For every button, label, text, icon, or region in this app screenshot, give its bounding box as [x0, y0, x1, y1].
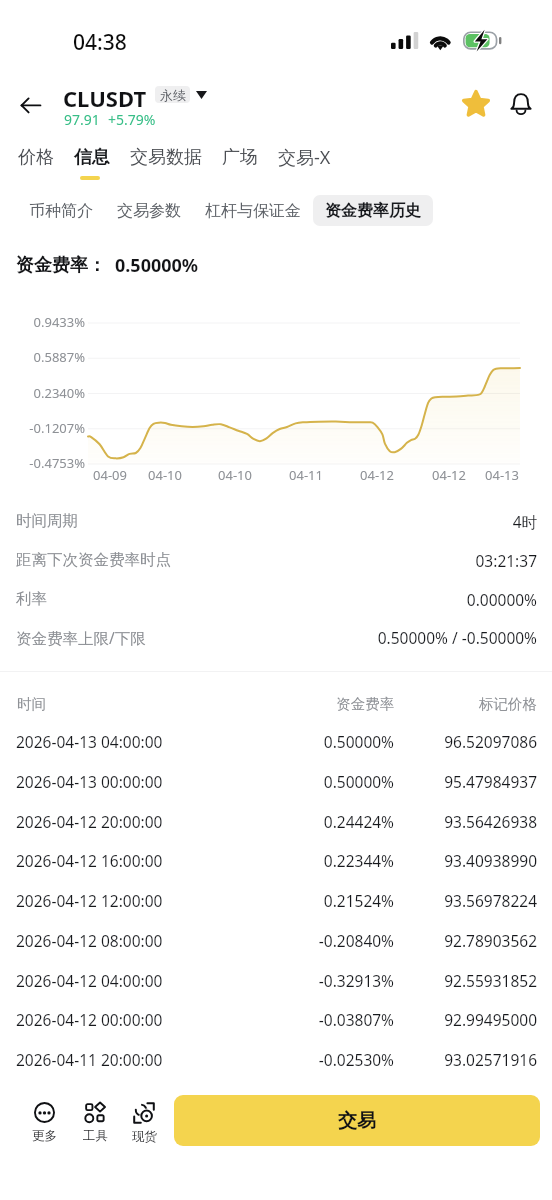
- staticText: 杠杆与保证金: [205, 201, 301, 221]
- staticText: 2026-04-13 00:00:00: [16, 771, 163, 792]
- staticText: 0.2340%: [15, 384, 85, 402]
- staticText: 93.56426938: [390, 811, 537, 832]
- staticText: 永续: [160, 87, 186, 103]
- staticText: 资金费率: [250, 695, 394, 713]
- staticText: 04:38: [73, 28, 127, 57]
- staticText: 93.40938990: [390, 850, 537, 871]
- staticText: 广场: [222, 146, 258, 169]
- staticText: 时间周期: [16, 511, 78, 531]
- staticText: -0.02530%: [240, 1049, 394, 1070]
- staticText: 0.00000%: [200, 589, 537, 610]
- staticText: 币种简介: [29, 201, 93, 221]
- staticText: 2026-04-12 20:00:00: [16, 811, 163, 832]
- button[interactable]: 2026-04-12 12:00:00: [0, 881, 552, 921]
- staticText: 资金费率：: [16, 254, 106, 277]
- staticText: 0.50000%: [240, 731, 394, 752]
- staticText: 97.91: [64, 110, 100, 129]
- button[interactable]: 资金费率历史: [313, 195, 433, 226]
- staticText: +5.79%: [108, 110, 156, 129]
- staticText: 工具: [83, 1128, 108, 1144]
- button[interactable]: 广场: [222, 146, 278, 169]
- staticText: 04-12: [428, 466, 470, 484]
- staticText: 交易: [338, 1109, 376, 1133]
- staticText: CLUSDT: [63, 83, 147, 113]
- staticText: 93.02571916: [390, 1049, 537, 1070]
- staticText: 0.50000%: [240, 771, 394, 792]
- button[interactable]: 更多: [20, 1102, 68, 1144]
- button[interactable]: 交易数据: [130, 146, 222, 169]
- button[interactable]: 2026-04-12 16:00:00: [0, 841, 552, 881]
- button[interactable]: 2026-04-13 00:00:00: [0, 762, 552, 802]
- staticText: 信息: [74, 146, 110, 169]
- button[interactable]: Notifications: [500, 83, 541, 125]
- staticText: 0.9433%: [15, 313, 85, 331]
- staticText: 交易-X: [278, 145, 331, 170]
- button[interactable]: 币种简介: [17, 195, 105, 226]
- staticText: 0.24424%: [240, 811, 394, 832]
- staticText: 04-10: [214, 466, 256, 484]
- button[interactable]: 2026-04-12 00:00:00: [0, 1000, 552, 1040]
- staticText: 2026-04-13 04:00:00: [16, 731, 163, 752]
- staticText: 资金费率历史: [325, 201, 421, 221]
- staticText: 04-11: [285, 466, 327, 484]
- staticText: 04-10: [144, 466, 186, 484]
- button[interactable]: 2026-04-11 20:00:00: [0, 1040, 552, 1080]
- staticText: 2026-04-12 00:00:00: [16, 1009, 163, 1030]
- staticText: 2026-04-12 16:00:00: [16, 850, 163, 871]
- button[interactable]: 交易: [174, 1095, 540, 1146]
- staticText: 96.52097086: [390, 731, 537, 752]
- staticText: -0.20840%: [240, 930, 394, 951]
- staticText: 04-12: [356, 466, 398, 484]
- staticText: 交易数据: [130, 146, 202, 169]
- staticText: 92.78903562: [390, 930, 537, 951]
- staticText: 0.50000% / -0.50000%: [200, 627, 537, 648]
- staticText: 04-13: [481, 466, 523, 484]
- staticText: 2026-04-12 08:00:00: [16, 930, 163, 951]
- staticText: 标记价格: [400, 695, 537, 713]
- staticText: 2026-04-12 04:00:00: [16, 970, 163, 991]
- staticText: 2026-04-11 20:00:00: [16, 1049, 163, 1070]
- button[interactable]: 2026-04-12 20:00:00: [0, 802, 552, 842]
- staticText: 0.21524%: [240, 890, 394, 911]
- staticText: 现货: [132, 1129, 157, 1145]
- staticText: 利率: [16, 589, 47, 609]
- staticText: 0.50000%: [115, 253, 199, 278]
- staticText: -0.03807%: [240, 1009, 394, 1030]
- staticText: 04-09: [89, 466, 131, 484]
- staticText: 距离下次资金费率时点: [16, 550, 171, 570]
- button[interactable]: 信息: [74, 146, 130, 169]
- staticText: 93.56978224: [390, 890, 537, 911]
- staticText: 92.99495000: [390, 1009, 537, 1030]
- staticText: 2026-04-12 12:00:00: [16, 890, 163, 911]
- staticText: -0.1207%: [15, 419, 85, 437]
- button[interactable]: 现货: [120, 1102, 168, 1145]
- staticText: 交易参数: [117, 201, 181, 221]
- staticText: 0.22344%: [240, 850, 394, 871]
- button[interactable]: 2026-04-13 04:00:00: [0, 722, 552, 762]
- staticText: -0.4753%: [15, 454, 85, 472]
- button[interactable]: 2026-04-12 08:00:00: [0, 921, 552, 961]
- staticText: 更多: [32, 1128, 57, 1144]
- button[interactable]: 交易-X: [278, 145, 331, 170]
- button[interactable]: 价格: [18, 146, 74, 169]
- staticText: 价格: [18, 146, 54, 169]
- staticText: 资金费率上限/下限: [16, 627, 146, 648]
- button[interactable]: Favorite: [455, 82, 496, 124]
- staticText: 03:21:37: [200, 550, 537, 571]
- staticText: -0.32913%: [240, 970, 394, 991]
- button[interactable]: 2026-04-12 04:00:00: [0, 961, 552, 1001]
- button[interactable]: Back: [9, 83, 53, 127]
- staticText: 时间: [17, 695, 46, 713]
- button[interactable]: 交易参数: [105, 195, 193, 226]
- staticText: 4时: [200, 511, 537, 532]
- staticText: 0.5887%: [15, 348, 85, 366]
- staticText: 95.47984937: [390, 771, 537, 792]
- button[interactable]: 工具: [71, 1102, 119, 1144]
- staticText: 92.55931852: [390, 970, 537, 991]
- button[interactable]: 杠杆与保证金: [193, 195, 313, 226]
